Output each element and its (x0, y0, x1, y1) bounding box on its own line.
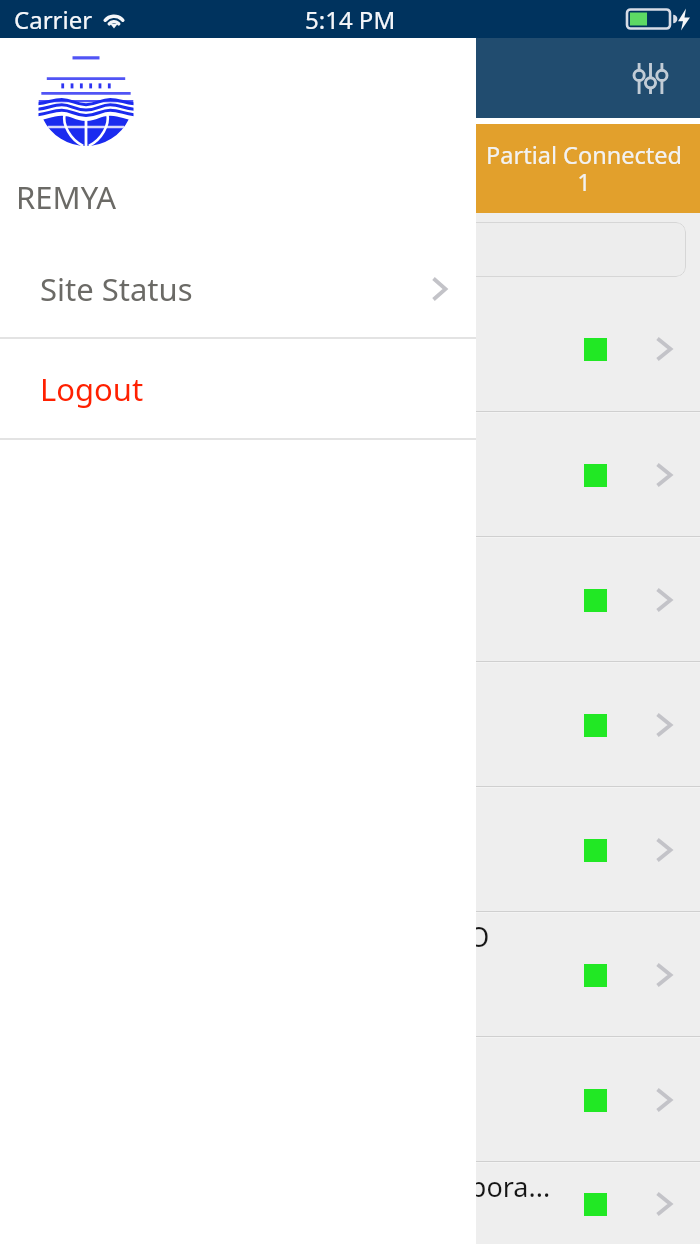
button[interactable]: Total 24 (0, 124, 234, 213)
button[interactable]: Thiruvananthapuram Municipal Corpora... (0, 1163, 700, 1244)
staticText: Partial Connected 1 (486, 139, 682, 198)
staticText: Thrissur Corporation (18, 668, 578, 705)
button[interactable]: Kozhikode Municipal Corporation OO (0, 913, 700, 1036)
staticText: Site Status (40, 268, 193, 310)
staticText: REMYA (16, 176, 117, 218)
button[interactable]: Kollam Corporation (0, 413, 700, 536)
button[interactable]: Thrissur Corporation (0, 663, 700, 786)
staticText: Kochi Corporation (18, 543, 578, 580)
button[interactable]: Thiruvananthapuram (0, 287, 700, 411)
button[interactable]: Kozhikode Corporation (0, 788, 700, 911)
staticText: Kollam Corporation (18, 418, 578, 455)
staticText: Thiruvananthapuram (18, 292, 578, 329)
staticText: Kozhikode Corporation (18, 793, 578, 830)
button[interactable]: Filter (624, 52, 676, 104)
button[interactable]: Partial Connected 1 (467, 124, 700, 213)
button[interactable]: Site Status (0, 240, 476, 337)
staticText: Kozhikode Municipal Corporation OO (18, 918, 578, 955)
staticText: Logout (40, 368, 144, 410)
staticText: Total 24 (90, 139, 144, 198)
staticText: 5:14 PM (305, 3, 396, 36)
button[interactable]: Kochi Corporation (0, 538, 700, 661)
staticText: Carrier (14, 3, 93, 36)
button[interactable]: Search (14, 222, 686, 277)
button[interactable]: Alappuzha Municipality (0, 1038, 700, 1161)
staticText: Alappuzha Municipality (18, 1043, 578, 1080)
staticText: Thiruvananthapuram Municipal Corpora... (18, 1168, 578, 1205)
button[interactable]: Logout (0, 339, 476, 438)
